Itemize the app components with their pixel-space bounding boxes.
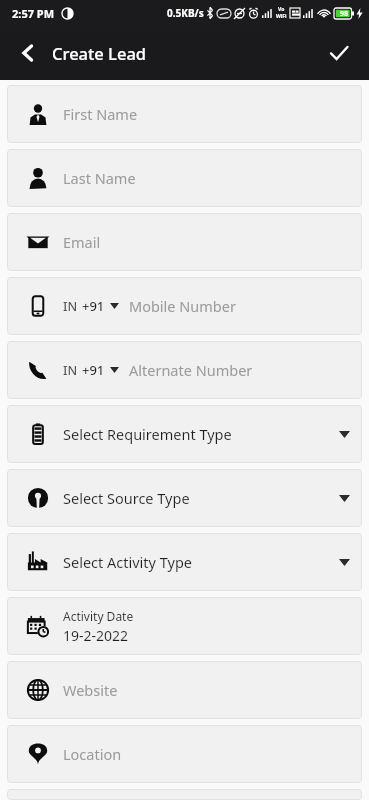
button[interactable]: Activity Date bbox=[7, 597, 362, 655]
staticText: WiFi bbox=[276, 13, 287, 20]
staticText: First Name bbox=[63, 104, 138, 124]
staticText: 2:57 PM bbox=[12, 6, 55, 21]
staticText: Select Requirement Type bbox=[63, 424, 232, 444]
staticText: Alternate Number bbox=[129, 360, 253, 380]
staticText: IN bbox=[63, 298, 78, 315]
staticText: Location bbox=[63, 744, 122, 764]
button[interactable]: Email bbox=[7, 213, 362, 271]
staticText: IN bbox=[63, 362, 78, 379]
staticText: Select Activity Type bbox=[63, 552, 192, 572]
staticText: +91 bbox=[82, 297, 105, 315]
button[interactable]: Select Requirement Type bbox=[7, 405, 362, 463]
button[interactable]: Website bbox=[7, 661, 362, 719]
button[interactable]: IN bbox=[7, 341, 362, 399]
button[interactable] bbox=[7, 789, 362, 800]
staticText: 0.5KB/s bbox=[167, 6, 204, 20]
button[interactable]: Select Source Type bbox=[7, 469, 362, 527]
button[interactable]: Save bbox=[319, 33, 359, 73]
staticText: Website bbox=[63, 680, 118, 700]
button[interactable]: Back bbox=[10, 35, 46, 71]
staticText: Vo bbox=[278, 6, 285, 13]
staticText: +91 bbox=[82, 361, 105, 379]
staticText: 98 bbox=[340, 9, 349, 19]
button[interactable]: Select Activity Type bbox=[7, 533, 362, 591]
staticText: Last Name bbox=[63, 168, 136, 188]
button[interactable]: IN bbox=[7, 277, 362, 335]
staticText: Create Lead bbox=[52, 42, 147, 64]
staticText: Activity Date bbox=[63, 608, 134, 624]
staticText: Mobile Number bbox=[129, 296, 236, 316]
button[interactable]: Location bbox=[7, 725, 362, 783]
button[interactable]: Last Name bbox=[7, 149, 362, 207]
staticText: 19-2-2022 bbox=[63, 626, 129, 645]
staticText: Email bbox=[63, 232, 101, 252]
staticText: Select Source Type bbox=[63, 488, 190, 508]
button[interactable]: First Name bbox=[7, 85, 362, 143]
